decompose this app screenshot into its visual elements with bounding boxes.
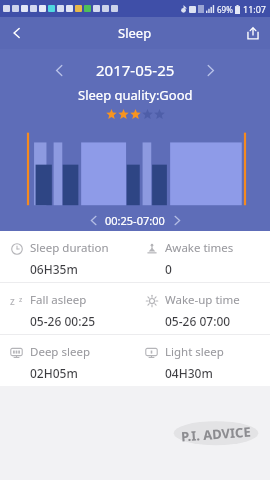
- button[interactable]: Share: [236, 17, 270, 49]
- button[interactable]: z: [0, 283, 135, 334]
- button[interactable]: Next day: [202, 61, 220, 79]
- button[interactable]: Sleep duration: [0, 231, 135, 282]
- staticText: z: [10, 294, 15, 307]
- staticText: Light sleep: [165, 344, 224, 360]
- staticText: Wake-up time: [165, 292, 240, 308]
- button[interactable]: Previous range: [85, 212, 101, 228]
- staticText: 05-26 07:00: [165, 313, 231, 329]
- staticText: 2017-05-25: [96, 60, 175, 80]
- staticText: P.I. ADVICE: [180, 423, 252, 445]
- staticText: Sleep duration: [30, 240, 109, 256]
- button[interactable]: Awake times: [135, 231, 270, 282]
- staticText: z: [19, 295, 23, 305]
- staticText: Deep sleep: [30, 344, 90, 360]
- staticText: Fall asleep: [30, 292, 87, 308]
- button[interactable]: Previous day: [50, 61, 68, 79]
- button[interactable]: Wake-up time: [135, 283, 270, 334]
- staticText: 00:25-07:00: [105, 213, 165, 228]
- staticText: 02H05m: [30, 365, 78, 381]
- staticText: Awake times: [165, 240, 234, 256]
- staticText: Sleep: [118, 24, 152, 42]
- button[interactable]: Light sleep: [135, 335, 270, 386]
- staticText: 69%: [217, 4, 233, 15]
- staticText: 0: [165, 261, 172, 277]
- button[interactable]: Next range: [169, 212, 185, 228]
- staticText: Sleep quality:Good: [78, 86, 193, 104]
- staticText: 04H30m: [165, 365, 213, 381]
- staticText: 11:07: [243, 3, 267, 15]
- button[interactable]: Deep sleep: [0, 335, 135, 386]
- button[interactable]: Back: [0, 17, 34, 49]
- staticText: 06H35m: [30, 261, 78, 277]
- staticText: 05-26 00:25: [30, 313, 96, 329]
